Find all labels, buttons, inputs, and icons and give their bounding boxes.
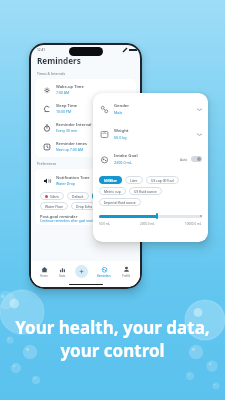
- button[interactable]: Intake goal slider: [99, 213, 202, 219]
- staticText: Notification Tone: [56, 175, 90, 180]
- button[interactable]: US fluid ounce: [129, 187, 162, 195]
- button[interactable]: US cup (8 fl oz): [146, 176, 179, 184]
- staticText: Male: [114, 110, 123, 115]
- button[interactable]: Metric cup: [99, 187, 126, 195]
- staticText: Imperial fluid ounce: [104, 200, 136, 204]
- staticText: Home: [40, 274, 48, 278]
- staticText: Default: [72, 194, 84, 198]
- staticText: Profile: [122, 274, 131, 278]
- staticText: Reminder Interval: [56, 122, 92, 127]
- button[interactable]: Add intake: [75, 265, 88, 278]
- staticText: 2300.0 mL: [114, 160, 132, 165]
- staticText: Reminders: [37, 55, 81, 66]
- staticText: 10:00 PM: [56, 109, 72, 114]
- button[interactable]: Chime: [92, 192, 113, 200]
- button[interactable]: Weight: [93, 123, 208, 145]
- button[interactable]: Water Flow: [40, 202, 68, 210]
- button[interactable]: Home: [38, 265, 50, 279]
- staticText: Weight: [114, 128, 129, 134]
- staticText: Intake Goal: [114, 153, 138, 159]
- button[interactable]: Auto goal toggle: [191, 156, 202, 162]
- button[interactable]: Reminder Interval: [35, 118, 136, 137]
- button[interactable]: Drop Echo: [71, 202, 98, 210]
- staticText: Silent: [50, 194, 59, 198]
- button[interactable]: Wake-up Time: [35, 80, 136, 99]
- staticText: Water Flow: [45, 204, 63, 208]
- staticText: Sleep Time: [56, 103, 78, 108]
- staticText: Chime: [97, 194, 108, 198]
- staticText: Post-goal reminder: [40, 214, 78, 219]
- button[interactable]: Stats: [57, 265, 68, 279]
- staticText: Continue reminders after goal reached: [40, 219, 99, 223]
- button[interactable]: Post-goal reminder: [35, 214, 136, 223]
- staticText: Wake-up Time: [56, 84, 84, 89]
- button[interactable]: Gender: [93, 98, 208, 120]
- staticText: 50.0 mL: [99, 222, 111, 226]
- staticText: 7:00 AM: [56, 90, 70, 95]
- button[interactable]: Imperial fluid ounce: [99, 198, 141, 206]
- staticText: Auto: [180, 157, 188, 161]
- button[interactable]: Profile: [120, 265, 133, 279]
- staticText: Water Drop: [56, 181, 75, 186]
- staticText: Preferences: [37, 161, 57, 166]
- button[interactable]: Milliliter: [99, 176, 122, 184]
- staticText: 12:41: [37, 48, 46, 52]
- button[interactable]: Silent: [40, 192, 64, 200]
- button[interactable]: Sleep Time: [35, 99, 136, 118]
- staticText: 65.0 kg: [114, 135, 127, 140]
- staticText: Gender: [114, 103, 130, 109]
- staticText: Next up 7:00 AM: [56, 147, 84, 152]
- staticText: Drop Echo: [76, 204, 93, 208]
- staticText: Times & Intervals: [37, 71, 66, 76]
- staticText: Reminders: [97, 274, 111, 278]
- button[interactable]: Intake Goal: [93, 148, 208, 170]
- staticText: 2300.0 mL: [140, 222, 155, 226]
- button[interactable]: Liter: [125, 176, 143, 184]
- staticText: Every 30 min: [56, 128, 78, 133]
- button[interactable]: Default: [67, 192, 89, 200]
- button[interactable]: Reminders: [95, 265, 113, 279]
- button[interactable]: Reminder times: [35, 137, 136, 156]
- staticText: Liter: [130, 178, 138, 182]
- staticText: Your health, your data,: [0, 316, 225, 339]
- staticText: Metric cup: [104, 189, 121, 193]
- staticText: US cup (8 fl oz): [151, 178, 174, 182]
- staticText: your control: [0, 339, 225, 362]
- staticText: 10000.0 mL: [185, 222, 202, 226]
- staticText: Stats: [59, 274, 66, 278]
- staticText: Milliliter: [104, 178, 117, 182]
- staticText: Reminder times: [56, 141, 87, 146]
- staticText: US fluid ounce: [134, 189, 157, 193]
- button[interactable]: Notification Tone: [35, 171, 136, 190]
